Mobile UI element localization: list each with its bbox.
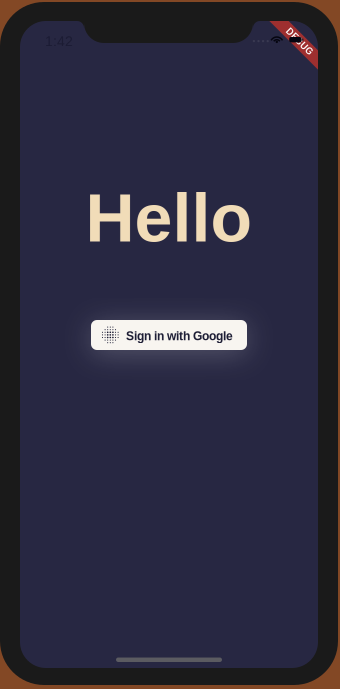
staticText: Sign in with Google xyxy=(126,329,233,343)
button[interactable]: Sign in with Google xyxy=(91,320,247,350)
staticText: Hello xyxy=(85,180,252,256)
staticText: DEBUG xyxy=(282,36,316,47)
staticText: 1:42 xyxy=(45,33,73,49)
